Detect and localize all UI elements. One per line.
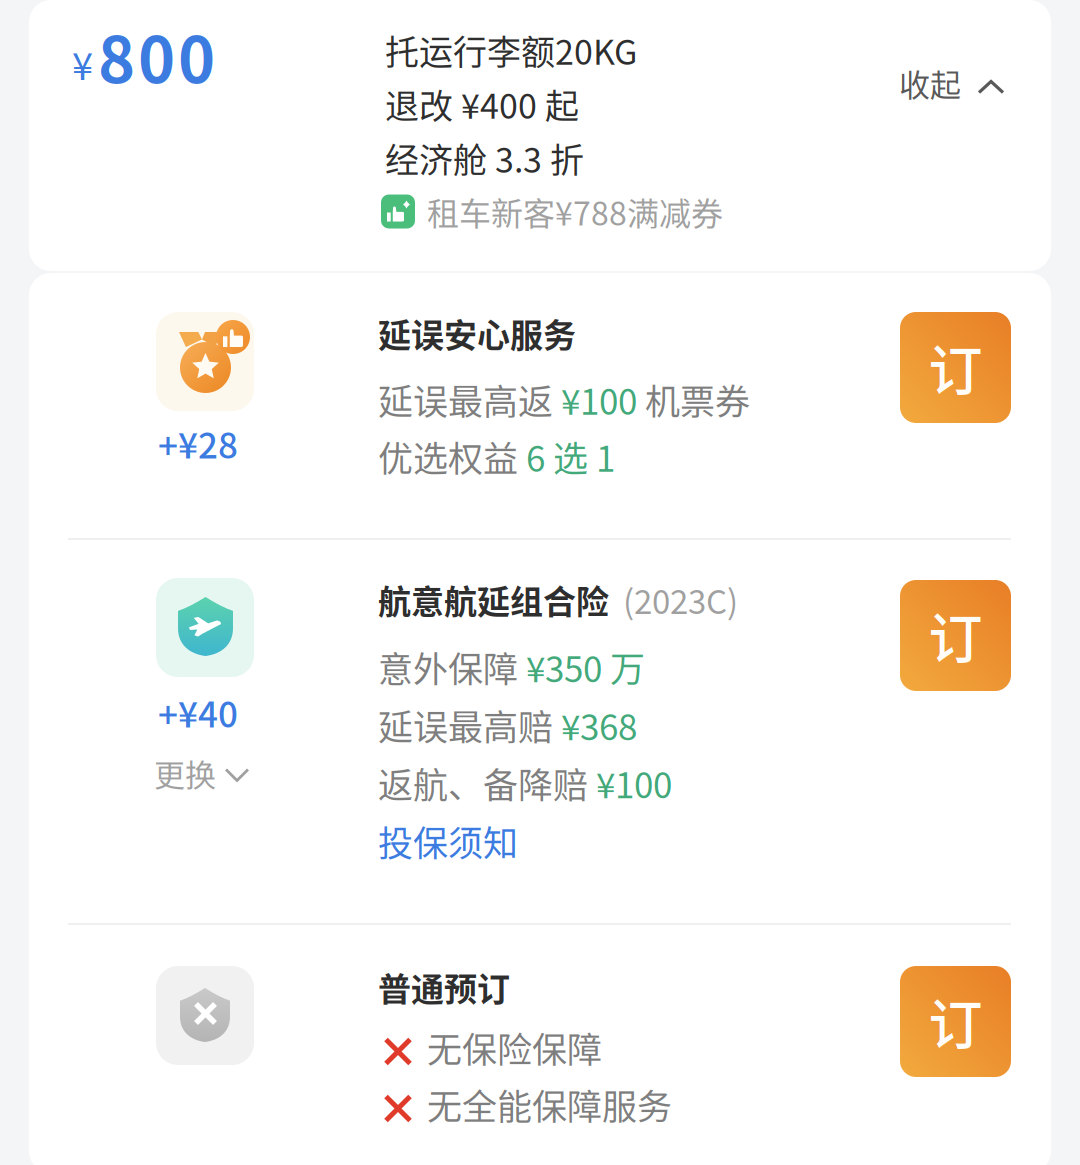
button[interactable]: 更换	[146, 751, 256, 795]
staticText: 延误最高赔	[378, 700, 561, 750]
staticText: 6 选 1	[526, 431, 615, 482]
staticText: 无保险保障	[427, 1022, 602, 1073]
staticText: 机票券	[637, 374, 750, 425]
staticText: 更换	[154, 751, 216, 795]
button[interactable]: 收起	[885, 51, 1017, 115]
staticText: 优选权益	[378, 431, 526, 482]
staticText: 托运行李额20KG	[385, 25, 637, 75]
staticText: 延误安心服务	[378, 309, 576, 357]
staticText: 租车新客¥788满减券	[427, 188, 723, 235]
staticText: 订	[928, 982, 982, 1061]
staticText: 延误最高返	[378, 374, 561, 425]
staticText: ¥100	[596, 758, 672, 808]
staticText: 无全能保障服务	[427, 1079, 672, 1130]
button[interactable]: 订	[900, 312, 1011, 423]
staticText: 意外保障	[378, 642, 526, 692]
staticText: +¥28	[158, 418, 238, 469]
staticText: 经济舱 3.3 折	[385, 133, 584, 183]
staticText: 收起	[899, 61, 961, 105]
staticText: 投保须知	[378, 816, 518, 866]
staticText: +¥40	[158, 687, 238, 738]
staticText: 800	[98, 10, 215, 101]
button[interactable]: 订	[900, 580, 1011, 691]
staticText: ¥100	[561, 374, 637, 425]
staticText: 订	[928, 596, 982, 675]
button[interactable]: 投保须知	[378, 812, 518, 870]
staticText: (2023C)	[623, 576, 738, 623]
button[interactable]: 订	[900, 966, 1011, 1077]
staticText: ¥350 万	[526, 642, 645, 692]
staticText: 航意航延组合险	[378, 576, 609, 623]
staticText: 订	[928, 328, 982, 407]
staticText: ¥368	[561, 700, 637, 750]
staticText: 退改 ¥400 起	[385, 79, 579, 129]
staticText: 普通预订	[378, 963, 510, 1011]
staticText: 返航、备降赔	[378, 758, 596, 808]
staticText: ¥	[72, 36, 93, 91]
